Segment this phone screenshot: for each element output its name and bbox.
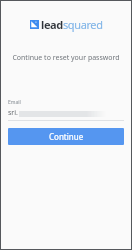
staticText: Continue [49,131,84,142]
button[interactable]: Email [8,99,124,121]
other: LeadSquared logo [30,20,39,29]
button[interactable]: Continue [8,128,124,145]
staticText: Email [8,99,21,106]
staticText: lead [41,17,63,32]
staticText: sri. [8,108,18,118]
staticText: squared [63,17,103,32]
staticText: Continue to reset your password [1,53,131,63]
